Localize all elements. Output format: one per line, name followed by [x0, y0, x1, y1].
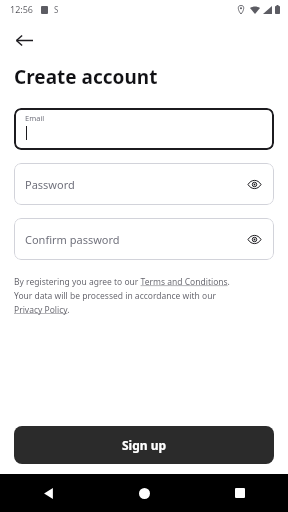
button[interactable]: Sign up: [14, 426, 274, 464]
staticText: 12:56: [10, 3, 34, 15]
staticText: Confirm password: [25, 232, 120, 247]
button[interactable]: Show password: [240, 170, 268, 198]
staticText: S: [54, 4, 59, 15]
staticText: Create account: [14, 64, 158, 90]
button[interactable]: Email: [14, 108, 274, 150]
button[interactable]: Password: [14, 163, 274, 205]
button[interactable]: Back: [6, 22, 42, 58]
staticText: Email: [25, 113, 45, 123]
button[interactable]: Recent apps: [192, 474, 288, 512]
button[interactable]: Back: [0, 474, 96, 512]
staticText: Sign up: [122, 437, 167, 453]
button[interactable]: Confirm password: [14, 218, 274, 260]
staticText: Password: [25, 177, 75, 192]
button[interactable]: Home: [96, 474, 192, 512]
button[interactable]: By registering you agree to our Terms an…: [14, 276, 274, 315]
button[interactable]: Show password: [240, 225, 268, 253]
